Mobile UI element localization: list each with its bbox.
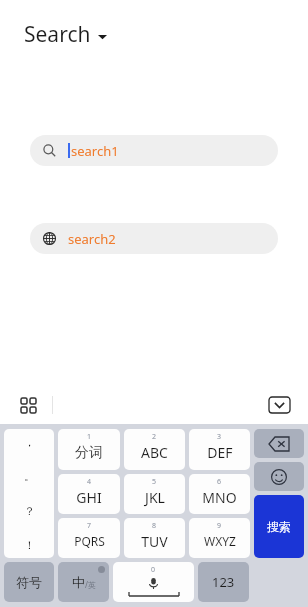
staticText: 1 (87, 432, 92, 442)
staticText: 7 (87, 521, 92, 531)
button[interactable]: 5 (124, 474, 185, 514)
staticText: 9 (217, 521, 222, 531)
staticText: 2 (152, 432, 157, 442)
staticText: MNO (202, 488, 237, 507)
button[interactable]: 6 (189, 474, 250, 514)
button[interactable]: Hide keyboard (264, 390, 294, 420)
staticText: 5 (152, 477, 157, 487)
staticText: DEF (207, 443, 233, 462)
button[interactable]: Emoji (254, 462, 304, 491)
button[interactable]: 4 (58, 474, 120, 514)
button[interactable]: 9 (189, 518, 250, 558)
staticText: /英 (85, 579, 96, 590)
staticText: 4 (87, 477, 92, 487)
button[interactable]: 2 (124, 429, 185, 470)
staticText: search2 (68, 230, 116, 248)
staticText: TUV (141, 532, 168, 551)
button[interactable]: 3 (189, 429, 250, 470)
staticText: 6 (217, 477, 222, 487)
staticText: GHI (76, 488, 102, 507)
staticText: WXYZ (204, 533, 236, 549)
staticText: PQRS (74, 533, 105, 549)
button[interactable]: 中 (58, 562, 109, 602)
button[interactable]: 1 (58, 429, 120, 470)
button[interactable]: 123 (198, 562, 249, 602)
button[interactable]: 搜索 (254, 495, 304, 558)
button[interactable]: ， (4, 429, 54, 558)
staticText: 符号 (16, 574, 42, 590)
staticText: search1 (71, 142, 119, 160)
button[interactable]: 8 (124, 518, 185, 558)
staticText: 。 (24, 469, 35, 483)
button[interactable]: Space (113, 562, 194, 602)
button[interactable]: Search (24, 20, 107, 49)
button[interactable]: Backspace (254, 429, 304, 458)
staticText: 搜索 (267, 519, 291, 534)
staticText: JKL (145, 488, 165, 507)
staticText: 中 (72, 574, 85, 590)
staticText: ？ (24, 504, 35, 518)
button[interactable]: 符号 (4, 562, 54, 602)
staticText: 8 (152, 521, 157, 531)
button[interactable]: 7 (58, 518, 120, 558)
staticText: 分词 (75, 444, 103, 462)
staticText: ABC (141, 443, 168, 462)
button[interactable]: search2 (30, 223, 278, 254)
staticText: 0 (151, 565, 156, 575)
staticText: 3 (217, 432, 222, 442)
staticText: Search (24, 20, 91, 49)
staticText: ， (24, 435, 35, 449)
button[interactable]: search1 (30, 135, 278, 166)
staticText: ！ (24, 538, 35, 552)
button[interactable]: Apps (14, 391, 42, 419)
staticText: 123 (212, 573, 235, 591)
